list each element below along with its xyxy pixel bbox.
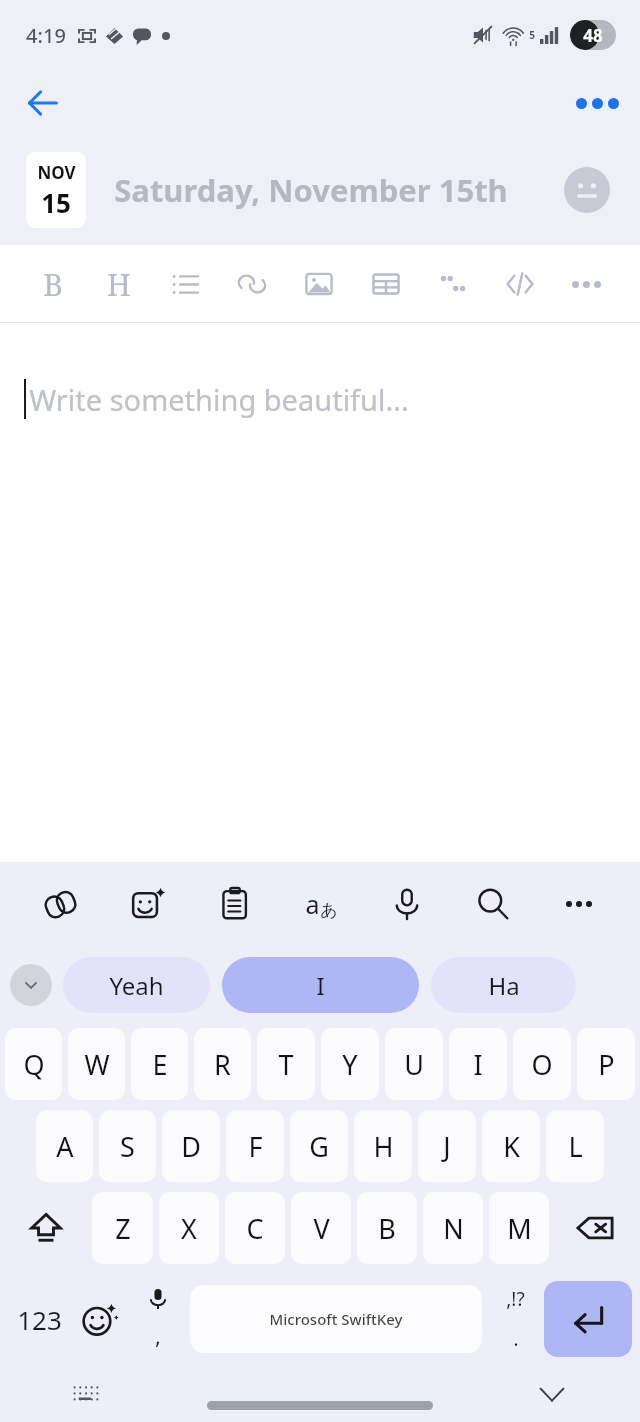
button[interactable]: Ha xyxy=(431,957,576,1013)
staticText: X xyxy=(181,1210,197,1247)
button[interactable]: W xyxy=(68,1028,125,1100)
button[interactable]: Q xyxy=(5,1028,62,1100)
button[interactable]: Back xyxy=(14,74,72,132)
button[interactable]: Enter xyxy=(544,1281,632,1357)
staticText: V xyxy=(313,1210,330,1247)
staticText: Write something beautiful... xyxy=(29,380,409,419)
button[interactable]: Table xyxy=(352,245,419,323)
button[interactable]: More xyxy=(536,862,622,946)
button[interactable]: Yeah xyxy=(63,957,210,1013)
button[interactable]: Mood xyxy=(560,163,614,217)
button[interactable]: 123 xyxy=(8,1276,70,1362)
staticText: S xyxy=(120,1128,135,1165)
button[interactable]: Quote xyxy=(419,245,486,323)
button[interactable]: O xyxy=(513,1028,571,1100)
button[interactable]: I xyxy=(449,1028,507,1100)
button[interactable]: Link xyxy=(218,245,285,323)
button[interactable]: E xyxy=(131,1028,188,1100)
staticText: H xyxy=(107,264,131,305)
button[interactable]: Heading xyxy=(86,245,152,323)
staticText: Y xyxy=(342,1046,358,1083)
button[interactable]: J xyxy=(418,1110,476,1182)
button[interactable]: Emoji xyxy=(70,1276,130,1362)
button[interactable]: Space xyxy=(190,1285,482,1353)
button[interactable]: Z xyxy=(92,1192,153,1264)
staticText: I xyxy=(473,1046,483,1083)
staticText: 48 xyxy=(583,24,603,47)
button[interactable]: Shift xyxy=(2,1192,89,1264)
staticText: 4:19 xyxy=(26,22,66,49)
staticText: B xyxy=(43,264,63,305)
staticText: Yeah xyxy=(109,969,164,1002)
button[interactable]: A xyxy=(36,1110,93,1182)
staticText: W xyxy=(84,1046,110,1083)
staticText: F xyxy=(248,1128,263,1165)
staticText: T xyxy=(278,1046,294,1083)
button[interactable]: Expand suggestions xyxy=(10,964,52,1006)
staticText: I xyxy=(316,969,325,1002)
button[interactable]: U xyxy=(385,1028,443,1100)
button[interactable]: SwiftKey xyxy=(18,862,105,946)
button[interactable]: More formatting xyxy=(553,245,620,323)
button[interactable]: G xyxy=(290,1110,348,1182)
button[interactable]: Keyboard layout xyxy=(66,1374,106,1414)
staticText: E xyxy=(152,1046,168,1083)
button[interactable]: Voice input xyxy=(364,862,450,946)
staticText: a xyxy=(305,887,320,921)
button[interactable]: Translate xyxy=(278,862,364,946)
staticText: P xyxy=(598,1046,615,1083)
staticText: 123 xyxy=(17,1302,62,1337)
staticText: A xyxy=(56,1128,74,1165)
button[interactable]: P xyxy=(577,1028,635,1100)
staticText: C xyxy=(246,1210,264,1247)
button[interactable]: ,!? xyxy=(486,1276,544,1362)
staticText: G xyxy=(309,1128,329,1165)
staticText: Z xyxy=(115,1210,131,1247)
staticText: J xyxy=(443,1128,451,1165)
staticText: R xyxy=(214,1046,231,1083)
button[interactable]: V xyxy=(291,1192,351,1264)
button[interactable]: D xyxy=(162,1110,220,1182)
staticText: Microsoft SwiftKey xyxy=(269,1309,403,1329)
button[interactable]: Backspace xyxy=(552,1192,638,1264)
button[interactable]: Search xyxy=(450,862,536,946)
staticText: Ha xyxy=(488,969,520,1002)
button[interactable]: NOV xyxy=(26,152,86,228)
button[interactable]: Bulleted list xyxy=(152,245,218,323)
button[interactable]: X xyxy=(159,1192,219,1264)
button[interactable]: L xyxy=(546,1110,604,1182)
staticText: あ xyxy=(320,900,338,921)
staticText: K xyxy=(503,1128,520,1165)
staticText: 15 xyxy=(41,185,71,220)
staticText: ,!? xyxy=(506,1286,525,1312)
button[interactable]: C xyxy=(225,1192,285,1264)
button[interactable]: Code xyxy=(486,245,553,323)
staticText: N xyxy=(443,1210,464,1247)
staticText: O xyxy=(531,1046,553,1083)
button[interactable]: Image xyxy=(285,245,352,323)
staticText: B xyxy=(378,1210,396,1247)
button[interactable]: Clipboard xyxy=(192,862,278,946)
staticText: NOV xyxy=(37,161,76,184)
button[interactable]: Hide keyboard xyxy=(530,1372,574,1416)
button[interactable]: Stickers xyxy=(105,862,192,946)
button[interactable]: R xyxy=(194,1028,251,1100)
button[interactable]: I xyxy=(222,957,419,1013)
staticText: 5 xyxy=(529,28,535,42)
button[interactable]: K xyxy=(482,1110,540,1182)
button[interactable]: Voice input xyxy=(130,1276,186,1362)
button[interactable]: Bold xyxy=(20,245,86,323)
staticText: Saturday, November 15th xyxy=(114,169,508,211)
button[interactable]: M xyxy=(489,1192,549,1264)
button[interactable]: B xyxy=(357,1192,417,1264)
staticText: . xyxy=(513,1326,519,1352)
button[interactable]: More options xyxy=(568,74,626,132)
staticText: U xyxy=(404,1046,424,1083)
button[interactable]: Y xyxy=(321,1028,379,1100)
button[interactable]: T xyxy=(257,1028,315,1100)
button[interactable]: N xyxy=(423,1192,483,1264)
staticText: Q xyxy=(23,1046,45,1083)
button[interactable]: F xyxy=(226,1110,284,1182)
button[interactable]: H xyxy=(354,1110,412,1182)
button[interactable]: S xyxy=(99,1110,156,1182)
